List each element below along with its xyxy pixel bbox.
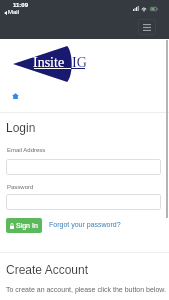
staticText: Create Account [6, 263, 89, 276]
staticText: Login [6, 121, 36, 134]
button[interactable]: Forgot your password? [49, 221, 121, 229]
button[interactable]: Email Address field [6, 159, 161, 175]
staticText: Sign In [16, 222, 38, 230]
button[interactable]: Home [10, 90, 21, 101]
button[interactable]: Password field [6, 194, 161, 210]
staticText: Email Address [7, 147, 46, 154]
staticText: Insite [33, 55, 65, 71]
staticText: IG [72, 55, 87, 71]
staticText: To create an account, please click the b… [6, 286, 166, 294]
button[interactable]: Open navigation menu [138, 19, 156, 35]
staticText: 11:09 [13, 2, 29, 9]
button[interactable]: Sign In [6, 218, 42, 233]
staticText: Mail [8, 9, 20, 16]
staticText: Password [7, 184, 34, 191]
